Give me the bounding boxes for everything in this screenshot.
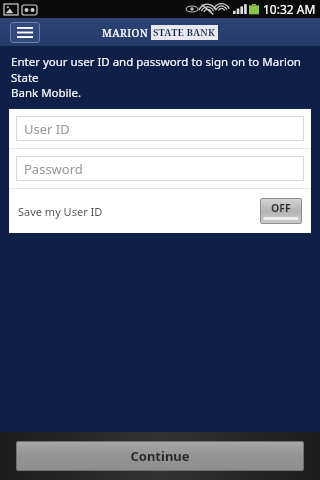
button[interactable]: Password — [16, 156, 304, 181]
staticText: MARION — [102, 26, 149, 40]
button[interactable]: User ID — [16, 116, 304, 141]
staticText: STATE BANK — [153, 26, 216, 39]
staticText: OFF — [271, 201, 291, 215]
button[interactable]: Save my User ID toggle, off — [260, 198, 302, 224]
staticText: Password — [24, 160, 83, 178]
staticText: 10:32 AM — [263, 1, 316, 17]
staticText: Continue — [130, 447, 190, 465]
staticText: User ID — [24, 120, 70, 138]
button[interactable]: Menu — [10, 22, 40, 43]
staticText: Save my User ID — [18, 204, 103, 219]
staticText: Enter your user ID and password to sign … — [11, 54, 310, 100]
button[interactable]: Continue — [16, 441, 304, 471]
